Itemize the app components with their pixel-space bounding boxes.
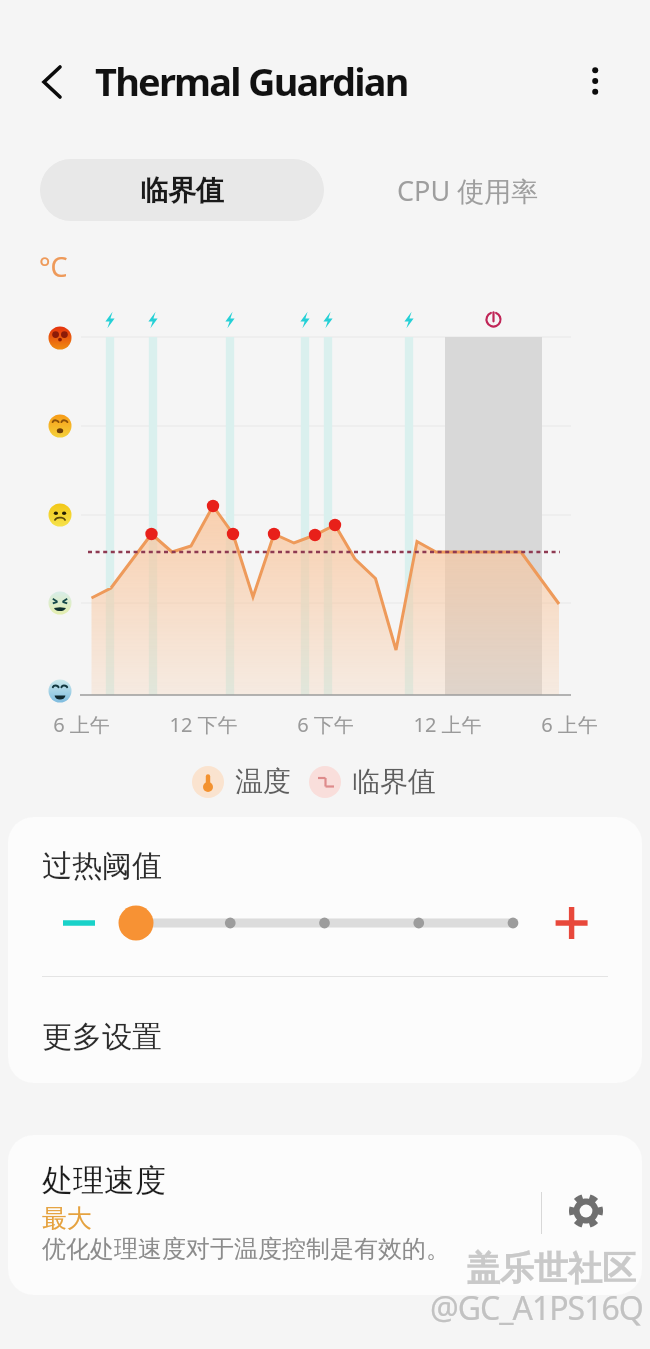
button[interactable]: 过热阈值 [8, 817, 642, 976]
staticText: 过热阈值 [42, 847, 162, 885]
staticText: 最大 [42, 1203, 92, 1234]
staticText: @GC_A1PS16Q [430, 1286, 650, 1330]
staticText: 临界值 [352, 764, 436, 799]
staticText: 6 下午 [297, 711, 354, 738]
staticText: 处理速度 [42, 1161, 166, 1200]
staticText: 12 上午 [413, 711, 482, 738]
button[interactable]: Back [24, 54, 80, 110]
staticText: 盖乐世社区 [466, 1247, 636, 1290]
staticText: Thermal Guardian [95, 55, 408, 107]
staticText: 更多设置 [42, 1018, 162, 1056]
staticText: CPU 使用率 [397, 172, 539, 209]
staticText: 温度 [235, 764, 291, 799]
button[interactable]: CPU 使用率 [350, 159, 586, 221]
staticText: 6 上午 [53, 711, 110, 738]
button[interactable]: More options [567, 53, 623, 109]
button[interactable]: 更多设置 [8, 977, 642, 1083]
staticText: 6 上午 [541, 711, 598, 738]
staticText: 12 下午 [169, 711, 238, 738]
staticText: 临界值 [140, 173, 224, 208]
button[interactable]: 处理速度 [8, 1135, 533, 1295]
button[interactable]: Settings [546, 1171, 626, 1251]
button[interactable]: 临界值 [40, 159, 324, 221]
staticText: °C [39, 248, 68, 285]
staticText: 优化处理速度对于温度控制是有效的。 [42, 1234, 450, 1264]
